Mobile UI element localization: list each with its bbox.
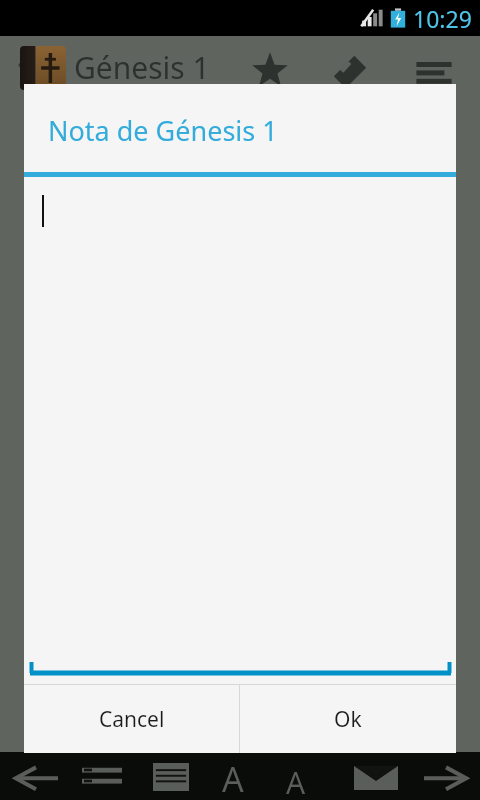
staticText: Génesis 1 [74,47,210,88]
button[interactable]: Table of contents [78,762,126,792]
button[interactable] [24,177,456,684]
staticText: Cancel [99,705,165,734]
button[interactable]: Next chapter [418,758,474,796]
staticText: 10:29 [413,3,472,34]
button[interactable]: Menu [414,56,454,86]
staticText: Ok [334,705,362,734]
button[interactable]: Paragraph mode [150,760,192,794]
button[interactable]: Edit note [332,54,368,90]
staticText: A [286,762,306,800]
button[interactable]: Share by email [352,764,400,792]
button[interactable]: Previous chapter [8,758,64,796]
staticText: A [222,756,244,800]
button[interactable]: Ok [240,685,456,753]
staticText: Nota de Génesis 1 [48,112,278,149]
button[interactable]: Cancel [24,685,239,753]
button[interactable]: Back [18,52,34,78]
button[interactable] [20,46,66,90]
button[interactable]: Bookmark [252,53,288,89]
